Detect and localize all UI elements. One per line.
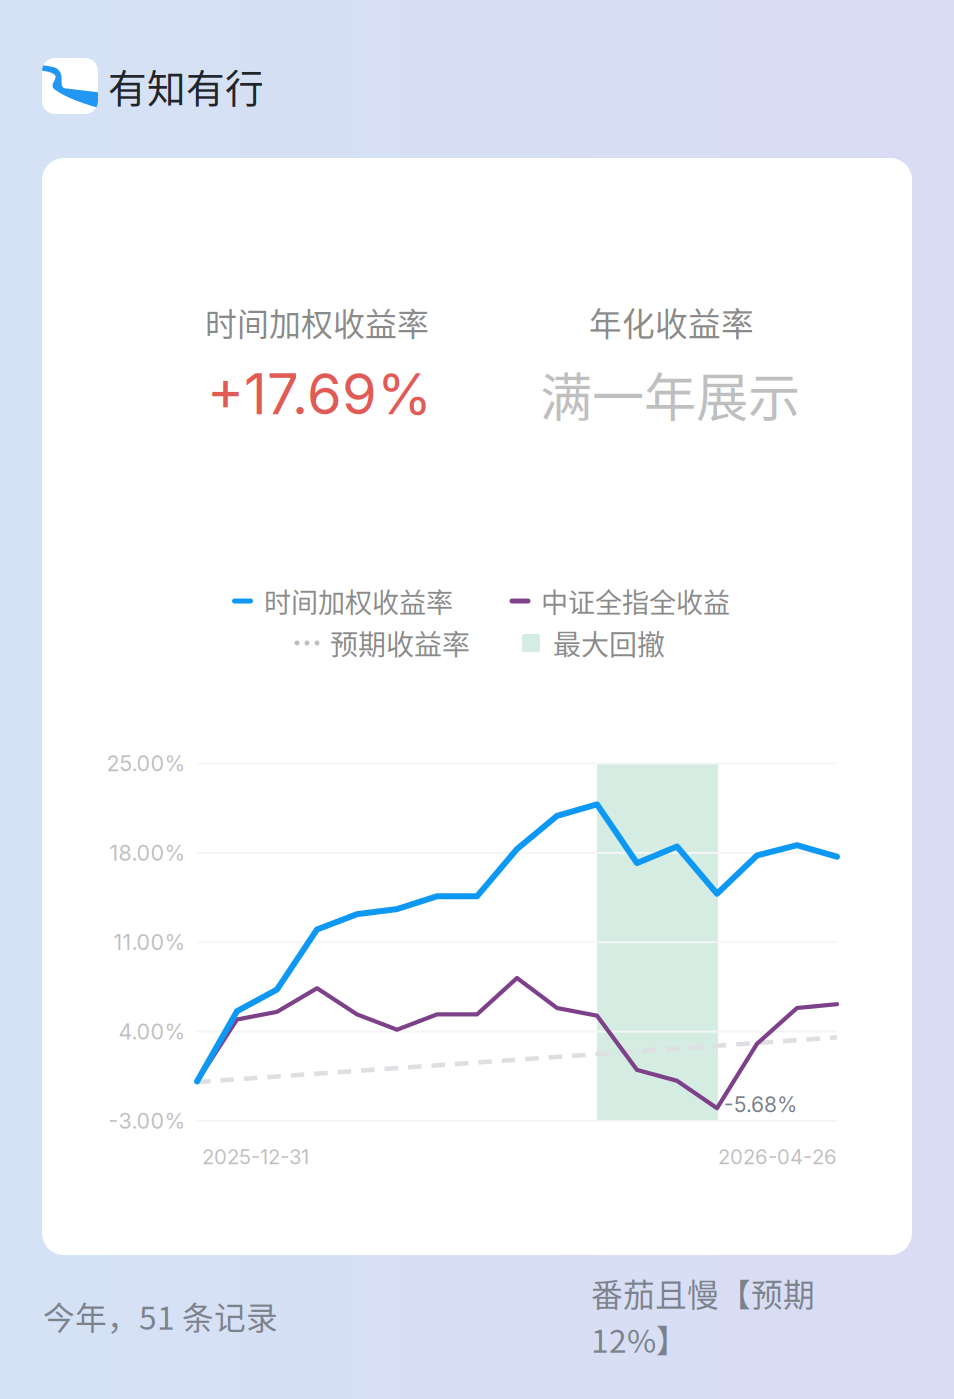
staticText: 时间加权收益率 bbox=[205, 299, 429, 345]
staticText: 2026-04-26 bbox=[718, 1145, 837, 1169]
staticText: 25.00% bbox=[106, 750, 185, 776]
staticText: 预期收益率 bbox=[330, 623, 470, 663]
staticText: 时间加权收益率 bbox=[264, 581, 453, 621]
staticText: 中证全指全收益 bbox=[541, 581, 730, 621]
staticText: 今年，51 条记录 bbox=[43, 1293, 278, 1339]
staticText: 满一年展示 bbox=[540, 356, 800, 432]
staticText: 有知有行 bbox=[108, 58, 264, 114]
staticText: 11.00% bbox=[113, 929, 185, 955]
staticText: 18.00% bbox=[109, 840, 185, 866]
button[interactable]: 有知有行 bbox=[42, 56, 282, 116]
button[interactable]: 时间加权收益率 +17.69% bbox=[42, 158, 912, 1255]
staticText: 番茄且慢【预期12%】 bbox=[591, 1270, 815, 1362]
staticText: 4.00% bbox=[118, 1019, 185, 1045]
staticText: 2025-12-31 bbox=[202, 1145, 309, 1169]
button[interactable]: 今年，51 条记录 bbox=[43, 1286, 343, 1346]
staticText: 最大回撤 bbox=[553, 623, 665, 663]
staticText: -3.00% bbox=[108, 1108, 185, 1134]
button[interactable]: 番茄且慢【预期12%】 bbox=[591, 1286, 911, 1346]
staticText: -5.68% bbox=[724, 1092, 797, 1117]
staticText: 年化收益率 bbox=[589, 298, 754, 346]
staticText: +17.69% bbox=[207, 360, 432, 428]
